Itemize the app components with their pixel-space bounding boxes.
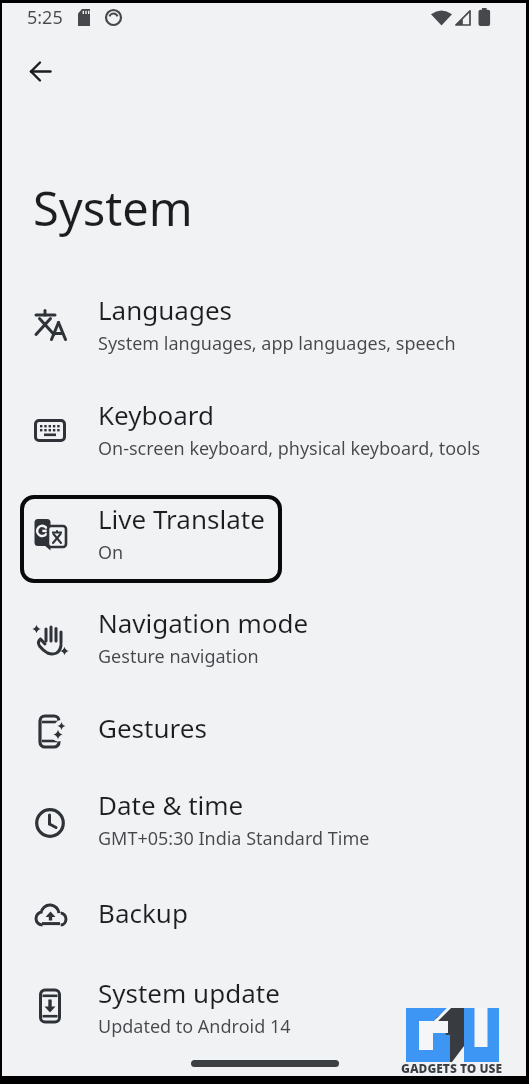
staticText: Updated to Android 14 [98,1014,291,1039]
button[interactable] [22,53,58,89]
staticText: Date & time [98,787,244,822]
staticText: System [33,176,193,240]
staticText: 5:25 [27,5,63,30]
staticText: System languages, app languages, speech [98,331,456,356]
button[interactable] [0,500,529,576]
button[interactable] [20,495,282,583]
staticText: Gesture navigation [98,644,259,669]
staticText: System update [98,975,280,1010]
button[interactable] [0,891,529,947]
staticText: GMT+05:30 India Standard Time [98,826,370,851]
staticText: On-screen keyboard, physical keyboard, t… [98,436,481,461]
staticText: Live Translate [98,501,265,536]
staticText: On [98,540,124,565]
button[interactable] [0,975,529,1045]
staticText: Backup [98,895,188,930]
button[interactable] [0,706,529,762]
button[interactable] [0,605,529,677]
button[interactable] [0,787,529,859]
button[interactable] [0,292,529,364]
staticText: Keyboard [98,397,215,432]
staticText: GADGETS TO USE [401,1060,503,1076]
staticText: Gestures [98,710,207,745]
button[interactable] [0,397,529,469]
staticText: Languages [98,292,233,327]
staticText: Navigation mode [98,605,309,640]
